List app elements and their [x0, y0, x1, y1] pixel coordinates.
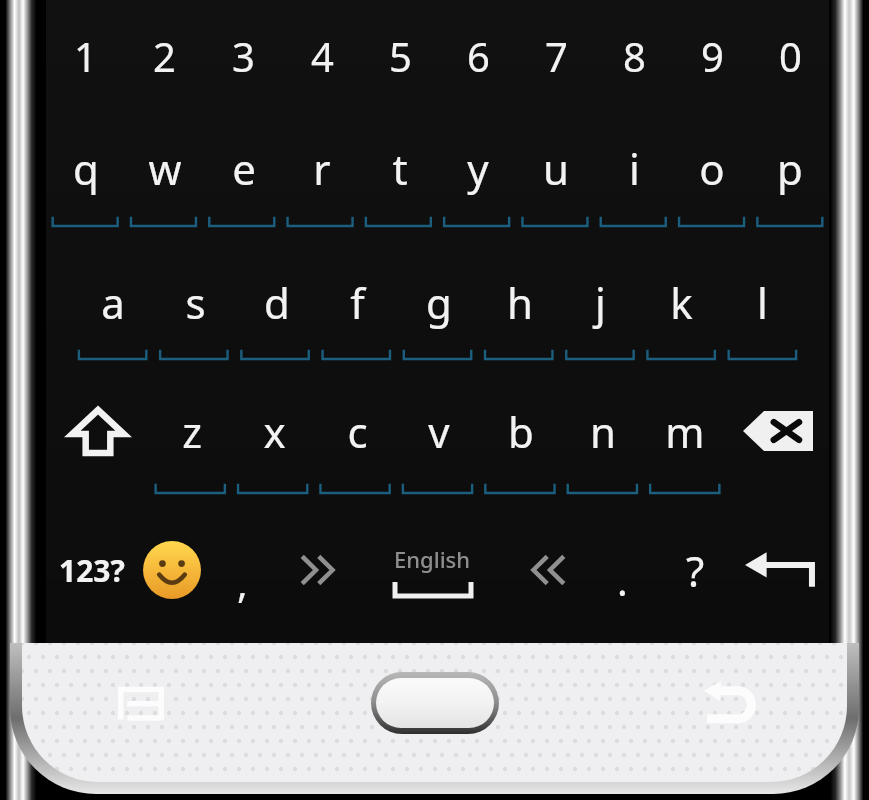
- staticText: v: [428, 403, 450, 460]
- button[interactable]: 7: [517, 0, 595, 112]
- staticText: e: [232, 140, 256, 197]
- button[interactable]: .: [586, 500, 659, 640]
- button[interactable]: f: [317, 246, 398, 358]
- staticText: s: [185, 274, 206, 331]
- button[interactable]: l: [722, 246, 803, 358]
- staticText: 4: [311, 29, 334, 83]
- staticText: 7: [545, 29, 568, 83]
- button[interactable]: x: [233, 370, 316, 492]
- button[interactable]: p: [751, 112, 829, 225]
- button[interactable]: Recents: [0, 643, 281, 763]
- button[interactable]: 1: [46, 0, 125, 112]
- staticText: i: [629, 140, 640, 197]
- staticText: a: [101, 274, 125, 331]
- staticText: b: [508, 403, 534, 460]
- button[interactable]: Next: [513, 500, 586, 640]
- button[interactable]: n: [562, 370, 644, 492]
- staticText: p: [777, 140, 803, 197]
- button[interactable]: o: [673, 112, 751, 225]
- staticText: 6: [467, 29, 490, 83]
- button[interactable]: 6: [439, 0, 517, 112]
- button[interactable]: 9: [673, 0, 751, 112]
- staticText: k: [670, 274, 693, 331]
- staticText: 0: [779, 29, 802, 83]
- staticText: ,: [237, 555, 248, 609]
- staticText: x: [263, 403, 286, 460]
- staticText: 3: [232, 29, 255, 83]
- button[interactable]: q: [46, 112, 125, 225]
- button[interactable]: k: [641, 246, 722, 358]
- staticText: t: [392, 140, 408, 197]
- staticText: g: [426, 274, 452, 331]
- button[interactable]: m: [644, 370, 726, 492]
- staticText: 123?: [59, 550, 125, 591]
- button[interactable]: Emoji: [138, 500, 206, 640]
- staticText: o: [699, 140, 725, 197]
- button[interactable]: z: [150, 370, 233, 492]
- staticText: 1: [74, 29, 97, 83]
- staticText: q: [73, 140, 99, 197]
- staticText: m: [665, 403, 705, 460]
- button[interactable]: w: [125, 112, 204, 225]
- button[interactable]: Shift: [46, 370, 150, 492]
- staticText: r: [313, 140, 331, 197]
- staticText: j: [595, 274, 606, 331]
- button[interactable]: 2: [125, 0, 204, 112]
- staticText: u: [543, 140, 569, 197]
- staticText: 5: [389, 29, 412, 83]
- staticText: y: [467, 140, 489, 197]
- staticText: 9: [701, 29, 724, 83]
- staticText: English: [394, 544, 471, 574]
- button[interactable]: a: [72, 246, 154, 358]
- button[interactable]: d: [236, 246, 317, 358]
- button[interactable]: b: [480, 370, 562, 492]
- button[interactable]: j: [560, 246, 641, 358]
- button[interactable]: 0: [751, 0, 829, 112]
- button[interactable]: Previous: [279, 500, 352, 640]
- staticText: 2: [153, 29, 176, 83]
- staticText: l: [757, 274, 768, 331]
- staticText: c: [347, 403, 368, 460]
- button[interactable]: h: [479, 246, 560, 358]
- staticText: f: [350, 274, 365, 331]
- staticText: ?: [686, 542, 705, 599]
- button[interactable]: t: [361, 112, 439, 225]
- button[interactable]: 3: [204, 0, 283, 112]
- button[interactable]: y: [439, 112, 517, 225]
- button[interactable]: ,: [206, 500, 279, 640]
- button[interactable]: Home: [281, 643, 589, 763]
- staticText: d: [264, 274, 290, 331]
- button[interactable]: 8: [595, 0, 673, 112]
- button[interactable]: r: [283, 112, 361, 225]
- button[interactable]: Space: [352, 500, 513, 640]
- staticText: n: [590, 403, 616, 460]
- button[interactable]: 5: [361, 0, 439, 112]
- button[interactable]: g: [398, 246, 479, 358]
- button[interactable]: ?: [659, 500, 732, 640]
- button[interactable]: s: [154, 246, 236, 358]
- button[interactable]: Back: [589, 643, 869, 763]
- button[interactable]: v: [398, 370, 480, 492]
- button[interactable]: 4: [283, 0, 361, 112]
- staticText: 8: [623, 29, 646, 83]
- button[interactable]: c: [316, 370, 398, 492]
- button[interactable]: i: [595, 112, 673, 225]
- button[interactable]: e: [204, 112, 283, 225]
- staticText: z: [182, 403, 202, 460]
- staticText: .: [617, 553, 628, 607]
- button[interactable]: Enter: [732, 500, 829, 640]
- button[interactable]: u: [517, 112, 595, 225]
- staticText: w: [148, 140, 182, 197]
- button[interactable]: 123?: [46, 500, 138, 640]
- button[interactable]: Backspace: [726, 370, 829, 492]
- staticText: h: [507, 274, 533, 331]
